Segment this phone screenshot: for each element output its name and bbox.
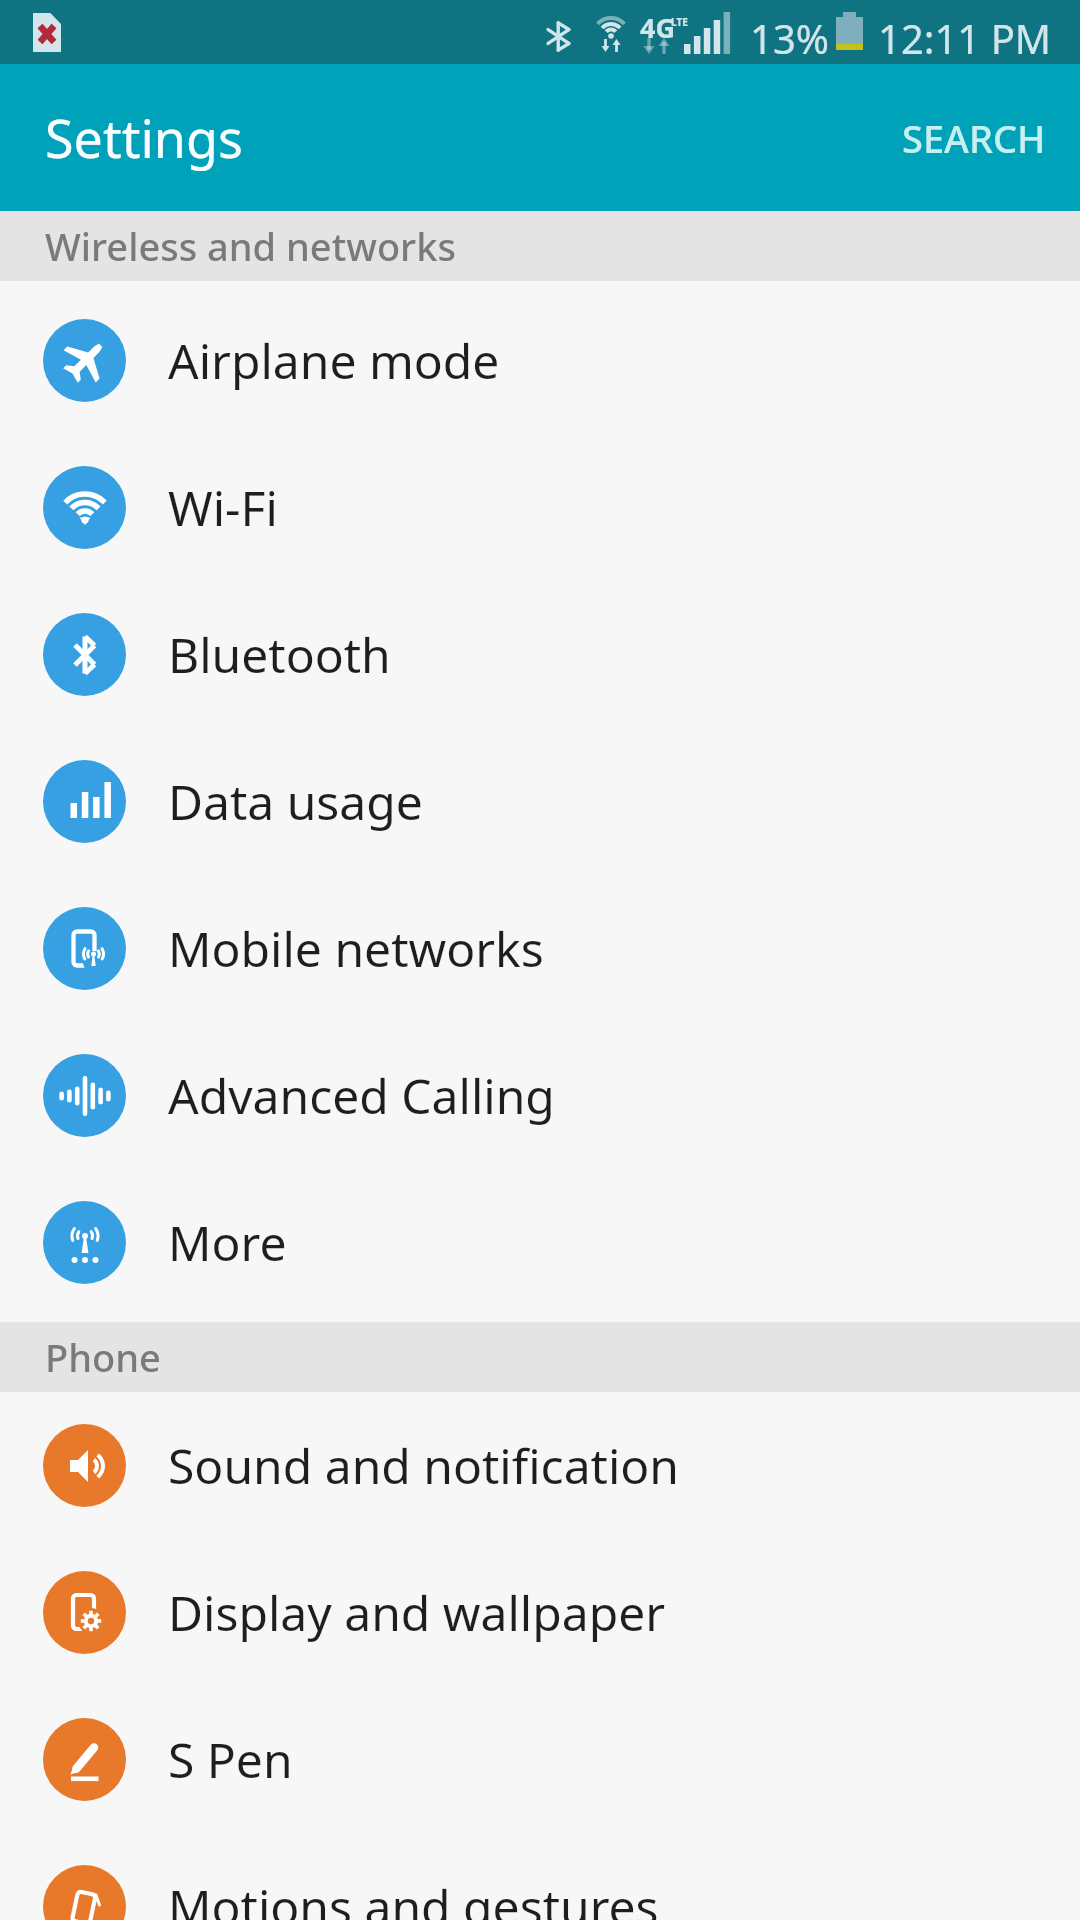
button[interactable]: Display and wallpaper [0,1539,1080,1686]
staticText: Display and wallpaper [168,1580,666,1645]
button[interactable]: Advanced Calling [0,1022,1080,1169]
staticText: Wi-Fi [168,475,278,540]
button[interactable]: Airplane mode [0,287,1080,434]
staticText: Phone [45,1331,161,1383]
staticText: Wireless and networks [45,220,456,272]
staticText: SEARCH [902,112,1046,164]
button[interactable]: SEARCH [902,112,1046,164]
staticText: More [168,1210,287,1275]
staticText: Settings [45,102,243,173]
staticText: Mobile networks [168,916,544,981]
button[interactable]: Mobile networks [0,875,1080,1022]
staticText: 12:11 PM [878,11,1052,65]
button[interactable]: S Pen [0,1686,1080,1833]
staticText: 13% [750,11,829,65]
button[interactable]: More [0,1169,1080,1316]
staticText: Data usage [168,769,423,834]
button[interactable]: Data usage [0,728,1080,875]
button[interactable]: Sound and notification [0,1392,1080,1539]
button[interactable]: Wi-Fi [0,434,1080,581]
staticText: Bluetooth [168,622,391,687]
staticText: Sound and notification [168,1433,680,1498]
staticText: S Pen [168,1727,293,1792]
staticText: 4G [640,9,675,46]
staticText: Advanced Calling [168,1063,555,1128]
button[interactable]: Bluetooth [0,581,1080,728]
staticText: LTE [671,15,688,29]
staticText: Airplane mode [168,328,500,393]
button[interactable]: Motions and gestures [0,1833,1080,1920]
staticText: Motions and gestures [168,1874,659,1920]
